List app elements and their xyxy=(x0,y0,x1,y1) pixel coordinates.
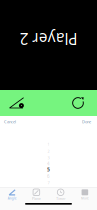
staticText: Player 2 xyxy=(19,29,77,49)
staticText: Done xyxy=(82,119,91,124)
staticText: 7 xyxy=(47,180,49,185)
staticText: 3 xyxy=(47,155,49,160)
staticText: 5 xyxy=(47,166,50,173)
button[interactable]: Rotate xyxy=(68,93,88,113)
button[interactable]: Angle tool xyxy=(5,93,28,113)
staticText: 4 xyxy=(47,161,50,167)
staticText: More xyxy=(81,196,89,200)
button[interactable]: Cancel xyxy=(2,117,18,126)
button[interactable]: Timer xyxy=(48,189,73,201)
button[interactable]: More xyxy=(73,189,97,200)
staticText: Angle xyxy=(8,196,17,200)
staticText: 8 xyxy=(47,187,49,192)
staticText: 1 xyxy=(47,142,49,147)
staticText: Timer xyxy=(56,197,65,201)
staticText: 2 xyxy=(47,149,49,154)
button[interactable]: Plane xyxy=(24,189,48,201)
staticText: 6 xyxy=(47,173,50,179)
button[interactable]: Angle xyxy=(0,189,24,200)
staticText: Cancel xyxy=(4,119,16,124)
button[interactable]: Done xyxy=(80,117,93,126)
staticText: Plane xyxy=(32,197,41,201)
